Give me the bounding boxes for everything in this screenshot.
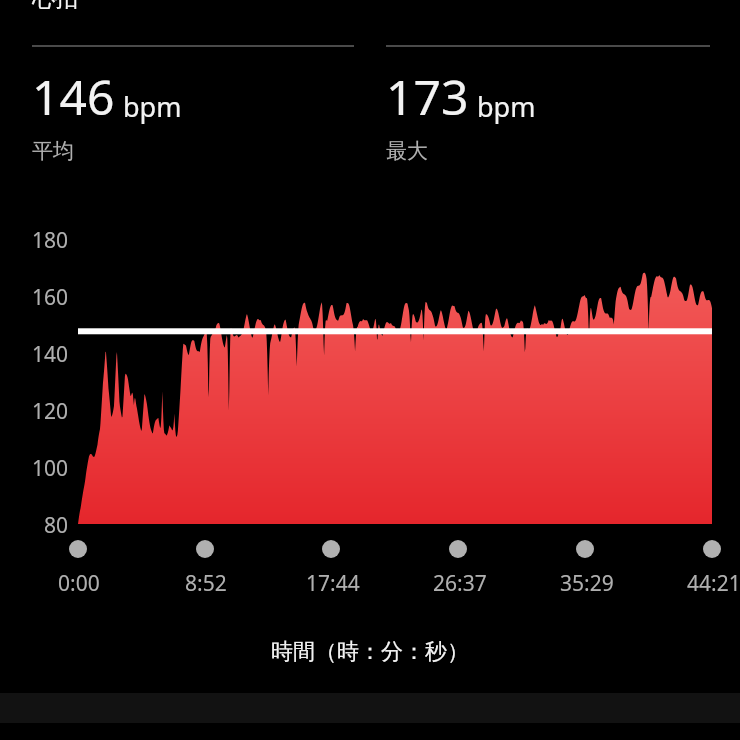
staticText: 146 [32, 64, 115, 129]
staticText: 時間（時：分：秒） [271, 638, 469, 666]
staticText: 最大 [386, 138, 428, 164]
staticText: 140 [32, 340, 69, 369]
staticText: 80 [44, 511, 69, 540]
staticText: 35:29 [560, 569, 614, 598]
other: 心拍数グラフ [0, 0, 740, 740]
button[interactable]: 146 [32, 45, 354, 138]
staticText: bpm [477, 88, 536, 125]
staticText: 平均 [32, 138, 74, 164]
staticText: 17:44 [306, 569, 360, 598]
button[interactable]: 173 [386, 45, 710, 138]
staticText: 173 [386, 64, 469, 129]
staticText: 100 [32, 454, 69, 483]
staticText: 心拍 [32, 0, 78, 13]
staticText: 180 [32, 226, 69, 255]
staticText: 26:37 [433, 569, 487, 598]
staticText: 44:21 [687, 569, 740, 598]
staticText: 0:00 [58, 569, 100, 598]
staticText: 8:52 [185, 569, 227, 598]
staticText: 160 [32, 283, 69, 312]
staticText: bpm [123, 88, 182, 125]
button[interactable]: 心拍 [32, 0, 78, 13]
staticText: 120 [32, 397, 69, 426]
